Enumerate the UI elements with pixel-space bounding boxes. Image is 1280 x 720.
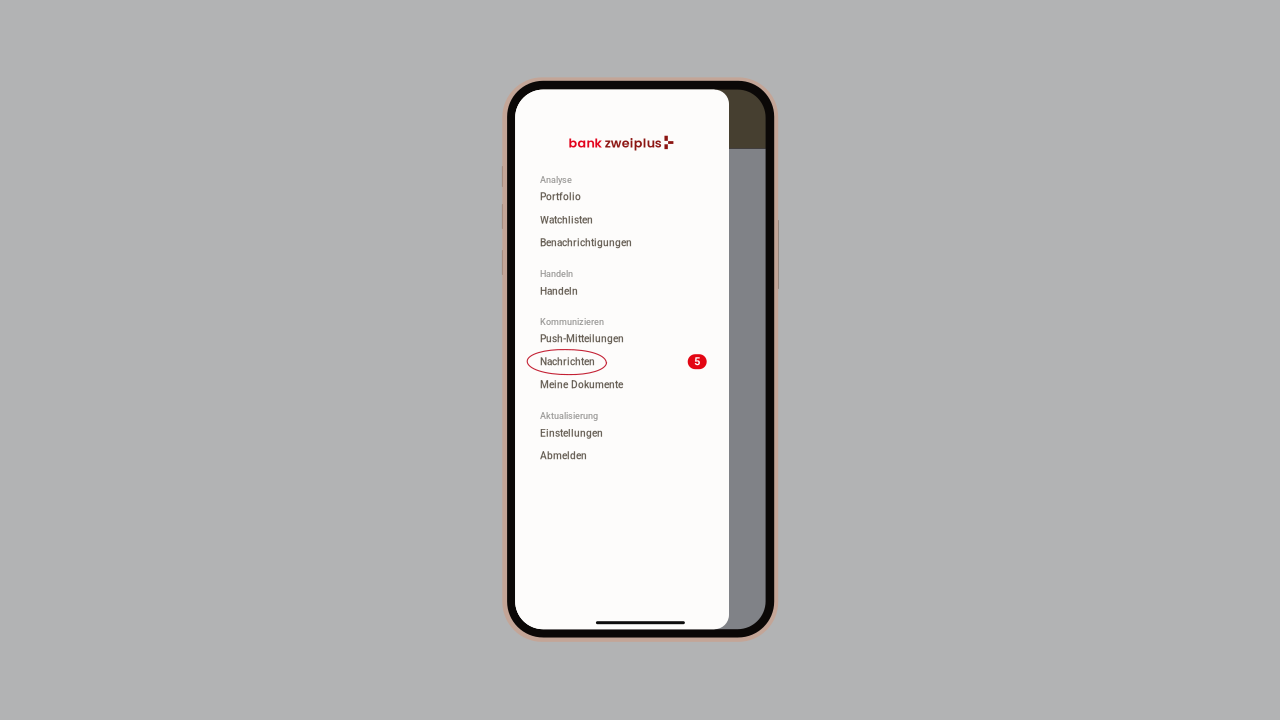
staticText: Abmelden [540,450,587,462]
button[interactable]: Meine Dokumente [540,376,710,394]
staticText: Handeln [540,269,573,279]
staticText: Meine Dokumente [540,379,623,391]
button[interactable]: Push-Mitteilungen [540,330,710,348]
staticText: Aktualisierung [540,411,598,421]
staticText: Portfolio [540,191,581,203]
staticText: Einstellungen [540,427,603,439]
staticText: Push-Mitteilungen [540,333,624,345]
button[interactable]: Einstellungen [540,424,710,442]
button[interactable]: Watchlisten [540,211,710,229]
staticText: 5 [694,355,700,368]
button[interactable]: Nachrichten [540,353,710,371]
staticText: Benachrichtigungen [540,237,632,249]
staticText: Nachrichten [540,356,595,368]
button[interactable]: Handeln [540,282,710,300]
staticText: Analyse [540,174,572,185]
staticText: zweiplus [605,134,662,152]
staticText: Handeln [540,285,578,297]
staticText: bank [568,134,601,152]
staticText: Kommunizieren [540,316,604,327]
button[interactable]: Benachrichtigungen [540,234,710,252]
staticText: Watchlisten [540,214,593,226]
button[interactable]: Portfolio [540,188,710,206]
button[interactable]: Abmelden [540,447,710,465]
